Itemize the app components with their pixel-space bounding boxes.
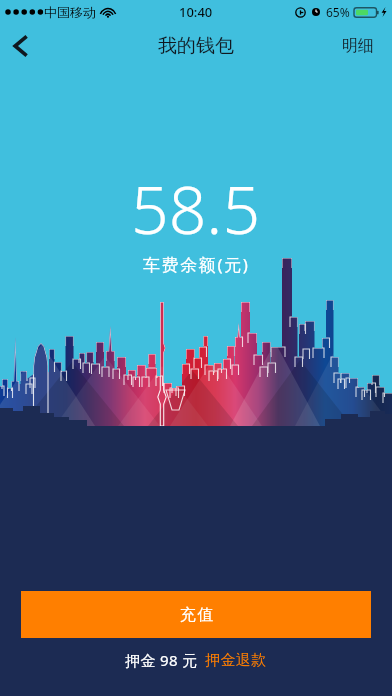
staticText: 押金退款 [205, 651, 267, 670]
button[interactable]: 充值 [21, 591, 371, 638]
staticText: 我的钱包 [158, 34, 234, 58]
staticText: 中国移动 [44, 4, 96, 20]
staticText: 58.5 [131, 163, 261, 253]
staticText: 充值 [179, 605, 214, 625]
staticText: 车费余额(元) [143, 253, 250, 276]
button[interactable]: 明细 [332, 26, 392, 66]
staticText: 押金 98 元 [125, 650, 198, 670]
button[interactable]: Back [0, 26, 40, 66]
staticText: 65% [326, 4, 350, 20]
button[interactable]: 押金退款 [198, 651, 267, 670]
staticText: 10:40 [179, 3, 213, 21]
staticText: 明细 [342, 36, 374, 56]
